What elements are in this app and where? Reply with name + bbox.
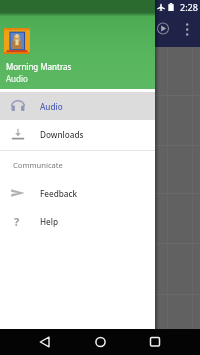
staticText: Downloads bbox=[40, 129, 84, 140]
button[interactable]: Downloads bbox=[0, 120, 155, 148]
button[interactable]: More options bbox=[183, 21, 195, 33]
staticText: 2:28 bbox=[180, 1, 200, 13]
button[interactable]: Play bbox=[151, 17, 174, 40]
staticText: Morning Mantras bbox=[6, 61, 72, 72]
staticText: Feedback bbox=[40, 188, 78, 199]
staticText: Audio bbox=[6, 73, 28, 84]
button[interactable]: Back bbox=[35, 332, 55, 352]
button[interactable]: Recents bbox=[145, 332, 165, 352]
staticText: ? bbox=[14, 214, 20, 228]
staticText: Communicate bbox=[13, 160, 63, 170]
button[interactable]: Home bbox=[90, 332, 110, 352]
button[interactable]: Audio bbox=[0, 92, 155, 120]
staticText: Help bbox=[40, 216, 59, 227]
button[interactable]: Feedback bbox=[0, 179, 155, 207]
staticText: Audio bbox=[40, 101, 63, 112]
button[interactable]: ? bbox=[0, 207, 155, 235]
